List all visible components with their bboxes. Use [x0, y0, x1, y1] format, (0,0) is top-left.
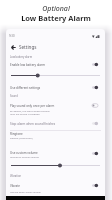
staticText: Vibrate when alarm sounds — [10, 190, 41, 193]
button[interactable]: Back — [8, 42, 18, 52]
staticText: Vibrate — [10, 184, 21, 188]
button[interactable]: Toggle — [92, 183, 98, 188]
staticText: Play sound only once per alarm — [10, 104, 55, 108]
button[interactable]: Ringtone — [6, 131, 105, 137]
button[interactable]: Slider — [11, 163, 100, 168]
button[interactable]: Toggle — [92, 62, 98, 67]
button[interactable]: Use different settings — [6, 85, 105, 91]
staticText: Instead of system volume — [10, 155, 39, 158]
staticText: Low battery alarm — [10, 55, 33, 59]
button[interactable]: Play sound only once per alarm — [6, 103, 105, 109]
staticText: Stop alarm when sound finishes — [10, 122, 56, 126]
button[interactable]: Toggle — [92, 121, 98, 126]
button[interactable]: Toggle — [92, 103, 98, 108]
button[interactable]: Toggle — [92, 151, 98, 156]
button[interactable]: Vibrate — [6, 183, 105, 189]
staticText: Use custom volume — [10, 151, 38, 155]
staticText: Ringtone — [10, 132, 23, 136]
staticText: Enable low battery alarm — [10, 63, 46, 67]
staticText: Settings — [19, 44, 37, 50]
button[interactable]: Enable low battery alarm — [6, 62, 105, 68]
staticText: Sound — [10, 94, 18, 98]
staticText: Low Battery Alarm — [0, 13, 112, 23]
staticText: Vibration — [10, 174, 22, 178]
staticText: By default, the alarm keeps playing unti… — [10, 109, 50, 116]
button[interactable]: Stop alarm when sound finishes — [6, 121, 105, 127]
button[interactable]: Toggle — [92, 85, 98, 90]
button[interactable]: Slider — [11, 73, 100, 78]
button[interactable]: Use custom volume — [6, 150, 105, 156]
staticText: 9:30 — [9, 34, 15, 38]
staticText: Use different settings — [10, 86, 41, 90]
staticText: Default (Slow Drum) — [10, 136, 33, 139]
staticText: Optional — [0, 4, 112, 14]
